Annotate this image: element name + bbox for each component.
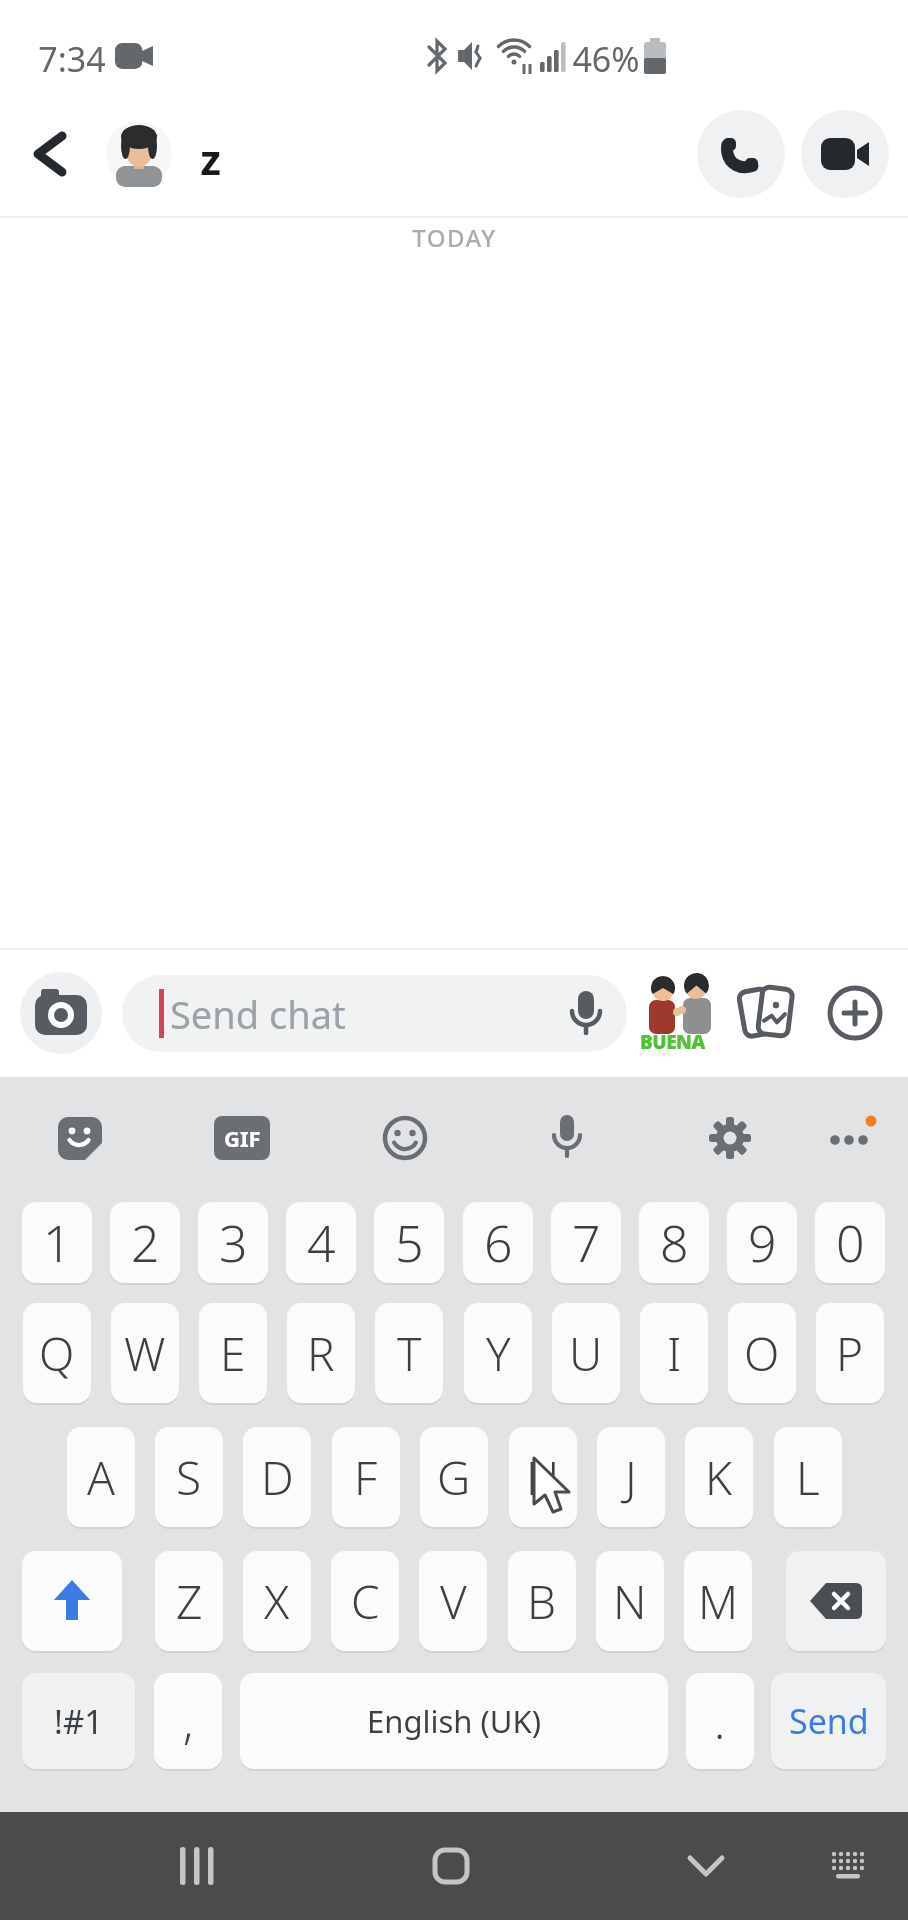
button[interactable]: W: [111, 1303, 179, 1403]
staticText: 8: [660, 1209, 689, 1277]
button[interactable]: [543, 1112, 591, 1160]
button[interactable]: [381, 1114, 429, 1162]
button[interactable]: Y: [464, 1303, 532, 1403]
staticText: Send chat: [170, 988, 346, 1040]
button[interactable]: [22, 120, 82, 188]
button[interactable]: [697, 110, 785, 198]
staticText: 3: [219, 1209, 248, 1277]
button[interactable]: [22, 1551, 122, 1651]
button[interactable]: [659, 1830, 753, 1902]
button[interactable]: [820, 1108, 880, 1164]
staticText: Z: [176, 1570, 203, 1633]
staticText: B: [527, 1570, 557, 1633]
button[interactable]: Send chat: [122, 975, 627, 1052]
button[interactable]: X: [243, 1551, 311, 1651]
button[interactable]: .: [686, 1673, 754, 1769]
staticText: TODAY: [412, 221, 497, 254]
button[interactable]: [786, 1551, 886, 1651]
button[interactable]: I: [640, 1303, 708, 1403]
button[interactable]: [404, 1830, 498, 1902]
staticText: 1: [43, 1209, 72, 1277]
button[interactable]: T: [375, 1303, 443, 1403]
button[interactable]: B: [508, 1551, 576, 1651]
button[interactable]: A: [67, 1427, 135, 1527]
button[interactable]: Q: [23, 1303, 91, 1403]
button[interactable]: V: [419, 1551, 487, 1651]
staticText: 7: [572, 1209, 601, 1277]
button[interactable]: [808, 1830, 888, 1902]
staticText: A: [87, 1446, 115, 1509]
staticText: .: [714, 1690, 726, 1753]
staticText: R: [307, 1322, 335, 1385]
button[interactable]: N: [596, 1551, 664, 1651]
staticText: L: [796, 1446, 820, 1509]
button[interactable]: 0: [815, 1202, 885, 1283]
button[interactable]: 8: [639, 1202, 709, 1283]
staticText: M: [698, 1570, 739, 1633]
button[interactable]: U: [552, 1303, 620, 1403]
button[interactable]: [106, 121, 172, 187]
button[interactable]: P: [816, 1303, 884, 1403]
button[interactable]: E: [199, 1303, 267, 1403]
staticText: ,: [183, 1690, 194, 1753]
button[interactable]: BUENA: [641, 968, 715, 1056]
button[interactable]: [737, 981, 795, 1047]
button[interactable]: L: [774, 1427, 842, 1527]
button[interactable]: 3: [198, 1202, 268, 1283]
button[interactable]: 7: [551, 1202, 621, 1283]
staticText: 5: [395, 1209, 424, 1277]
staticText: 2: [131, 1209, 160, 1277]
button[interactable]: [56, 1114, 104, 1162]
staticText: C: [351, 1570, 380, 1633]
button[interactable]: 6: [463, 1202, 533, 1283]
staticText: 46%: [572, 36, 640, 76]
staticText: GIF: [224, 1123, 261, 1153]
button[interactable]: C: [331, 1551, 399, 1651]
button[interactable]: GIF: [214, 1116, 270, 1160]
staticText: I: [667, 1322, 682, 1385]
button[interactable]: [824, 982, 886, 1044]
staticText: K: [705, 1446, 733, 1509]
button[interactable]: [20, 972, 102, 1054]
button[interactable]: 9: [727, 1202, 797, 1283]
button[interactable]: Send: [771, 1673, 886, 1769]
staticText: 0: [836, 1209, 865, 1277]
button[interactable]: D: [243, 1427, 311, 1527]
staticText: F: [354, 1446, 378, 1509]
button[interactable]: O: [728, 1303, 796, 1403]
staticText: 9: [748, 1209, 777, 1277]
button[interactable]: J: [597, 1427, 665, 1527]
staticText: E: [220, 1322, 246, 1385]
staticText: Y: [486, 1322, 511, 1385]
button[interactable]: [801, 110, 889, 198]
staticText: U: [569, 1322, 603, 1385]
staticText: 4: [307, 1209, 336, 1277]
button[interactable]: ,: [154, 1673, 222, 1769]
button[interactable]: H: [509, 1427, 577, 1527]
button[interactable]: 5: [374, 1202, 444, 1283]
staticText: S: [176, 1446, 202, 1509]
button[interactable]: Z: [155, 1551, 223, 1651]
button[interactable]: 1: [22, 1202, 92, 1283]
staticText: W: [124, 1322, 166, 1385]
button[interactable]: 2: [110, 1202, 180, 1283]
staticText: N: [613, 1570, 647, 1633]
staticText: 6: [484, 1209, 513, 1277]
staticText: G: [437, 1446, 471, 1509]
staticText: J: [625, 1446, 637, 1509]
button[interactable]: !#1: [22, 1673, 135, 1769]
staticText: !#1: [54, 1699, 104, 1744]
button[interactable]: M: [684, 1551, 752, 1651]
button[interactable]: English (UK): [240, 1673, 668, 1769]
button[interactable]: R: [287, 1303, 355, 1403]
staticText: English (UK): [367, 1700, 541, 1742]
button[interactable]: 4: [286, 1202, 356, 1283]
staticText: T: [397, 1322, 422, 1385]
button[interactable]: [150, 1830, 244, 1902]
button[interactable]: F: [332, 1427, 400, 1527]
button[interactable]: [706, 1114, 754, 1162]
button[interactable]: S: [155, 1427, 223, 1527]
staticText: X: [264, 1570, 290, 1633]
button[interactable]: G: [420, 1427, 488, 1527]
button[interactable]: K: [685, 1427, 753, 1527]
